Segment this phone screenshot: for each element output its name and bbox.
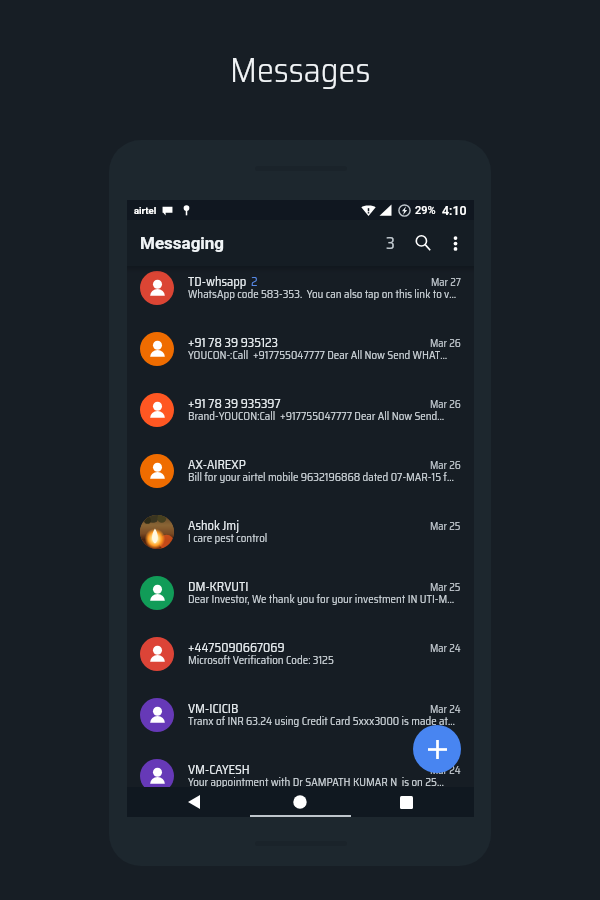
staticText: 3 bbox=[386, 230, 395, 256]
staticText: Mar 24 bbox=[430, 762, 461, 779]
button[interactable]: VM-CAYESH bbox=[127, 745, 474, 806]
button[interactable]: Recent apps bbox=[391, 788, 421, 816]
staticText: Messages bbox=[230, 43, 371, 97]
button[interactable]: New message bbox=[413, 725, 461, 773]
button[interactable]: Search bbox=[409, 229, 437, 257]
staticText: Microsoft Verification Code: 3125 bbox=[188, 652, 334, 669]
staticText: 2 bbox=[251, 272, 258, 292]
staticText: Mar 26 bbox=[430, 457, 461, 474]
button[interactable]: More options bbox=[442, 230, 468, 256]
staticText: Bill for your airtel mobile 9632196868 d… bbox=[188, 469, 454, 486]
staticText: Tranx of INR 63.24 using Credit Card 5xx… bbox=[188, 713, 455, 730]
staticText: Mar 26 bbox=[430, 396, 461, 413]
staticText: AX-AIREXP bbox=[188, 455, 246, 475]
staticText: Mar 25 bbox=[430, 579, 461, 596]
staticText: Brand-YOUCON:Call +917755047777 Dear All… bbox=[188, 408, 445, 425]
staticText: VM-CAYESH bbox=[188, 760, 250, 780]
staticText: 29% bbox=[415, 204, 436, 217]
button[interactable]: Back bbox=[179, 788, 209, 816]
button[interactable]: +91 78 39 935397 bbox=[127, 379, 474, 440]
staticText: 4:10 bbox=[442, 203, 467, 218]
staticText: +91 78 39 935397 bbox=[188, 394, 281, 414]
staticText: Dear Investor, We thank you for your inv… bbox=[188, 591, 455, 608]
staticText: VM-ICICIB bbox=[188, 699, 239, 719]
staticText: WhatsApp code 583-353. You can also tap … bbox=[188, 286, 457, 303]
staticText: +4475090667069 bbox=[188, 638, 285, 658]
staticText: Mar 24 bbox=[430, 701, 461, 718]
staticText: YOUCON-:Call +917755047777 Dear All Now … bbox=[188, 347, 448, 364]
button[interactable]: DM-KRVUTI bbox=[127, 562, 474, 623]
staticText: airtel bbox=[134, 205, 157, 216]
button[interactable]: +4475090667069 bbox=[127, 623, 474, 684]
staticText: Mar 26 bbox=[430, 335, 461, 352]
button[interactable]: Unread threads 3 bbox=[377, 230, 403, 256]
staticText: TD-whsapp bbox=[188, 272, 247, 292]
staticText: Mar 24 bbox=[430, 640, 461, 657]
staticText: Messaging bbox=[140, 233, 225, 253]
staticText: DM-KRVUTI bbox=[188, 577, 249, 597]
button[interactable]: AX-AIREXP bbox=[127, 440, 474, 501]
button[interactable]: +91 78 39 935123 bbox=[127, 318, 474, 379]
staticText: Ashok Jmj bbox=[188, 516, 239, 536]
staticText: Mar 27 bbox=[431, 274, 461, 291]
button[interactable]: Home bbox=[285, 788, 315, 816]
staticText: Mar 25 bbox=[430, 518, 461, 535]
button[interactable]: Ashok Jmj bbox=[127, 501, 474, 562]
staticText: Your appointment with Dr SAMPATH KUMAR N… bbox=[188, 774, 444, 791]
button[interactable]: VM-ICICIB bbox=[127, 684, 474, 745]
button[interactable]: TD-whsapp bbox=[127, 257, 474, 318]
staticText: I care pest control bbox=[188, 530, 268, 547]
staticText: +91 78 39 935123 bbox=[188, 333, 279, 353]
